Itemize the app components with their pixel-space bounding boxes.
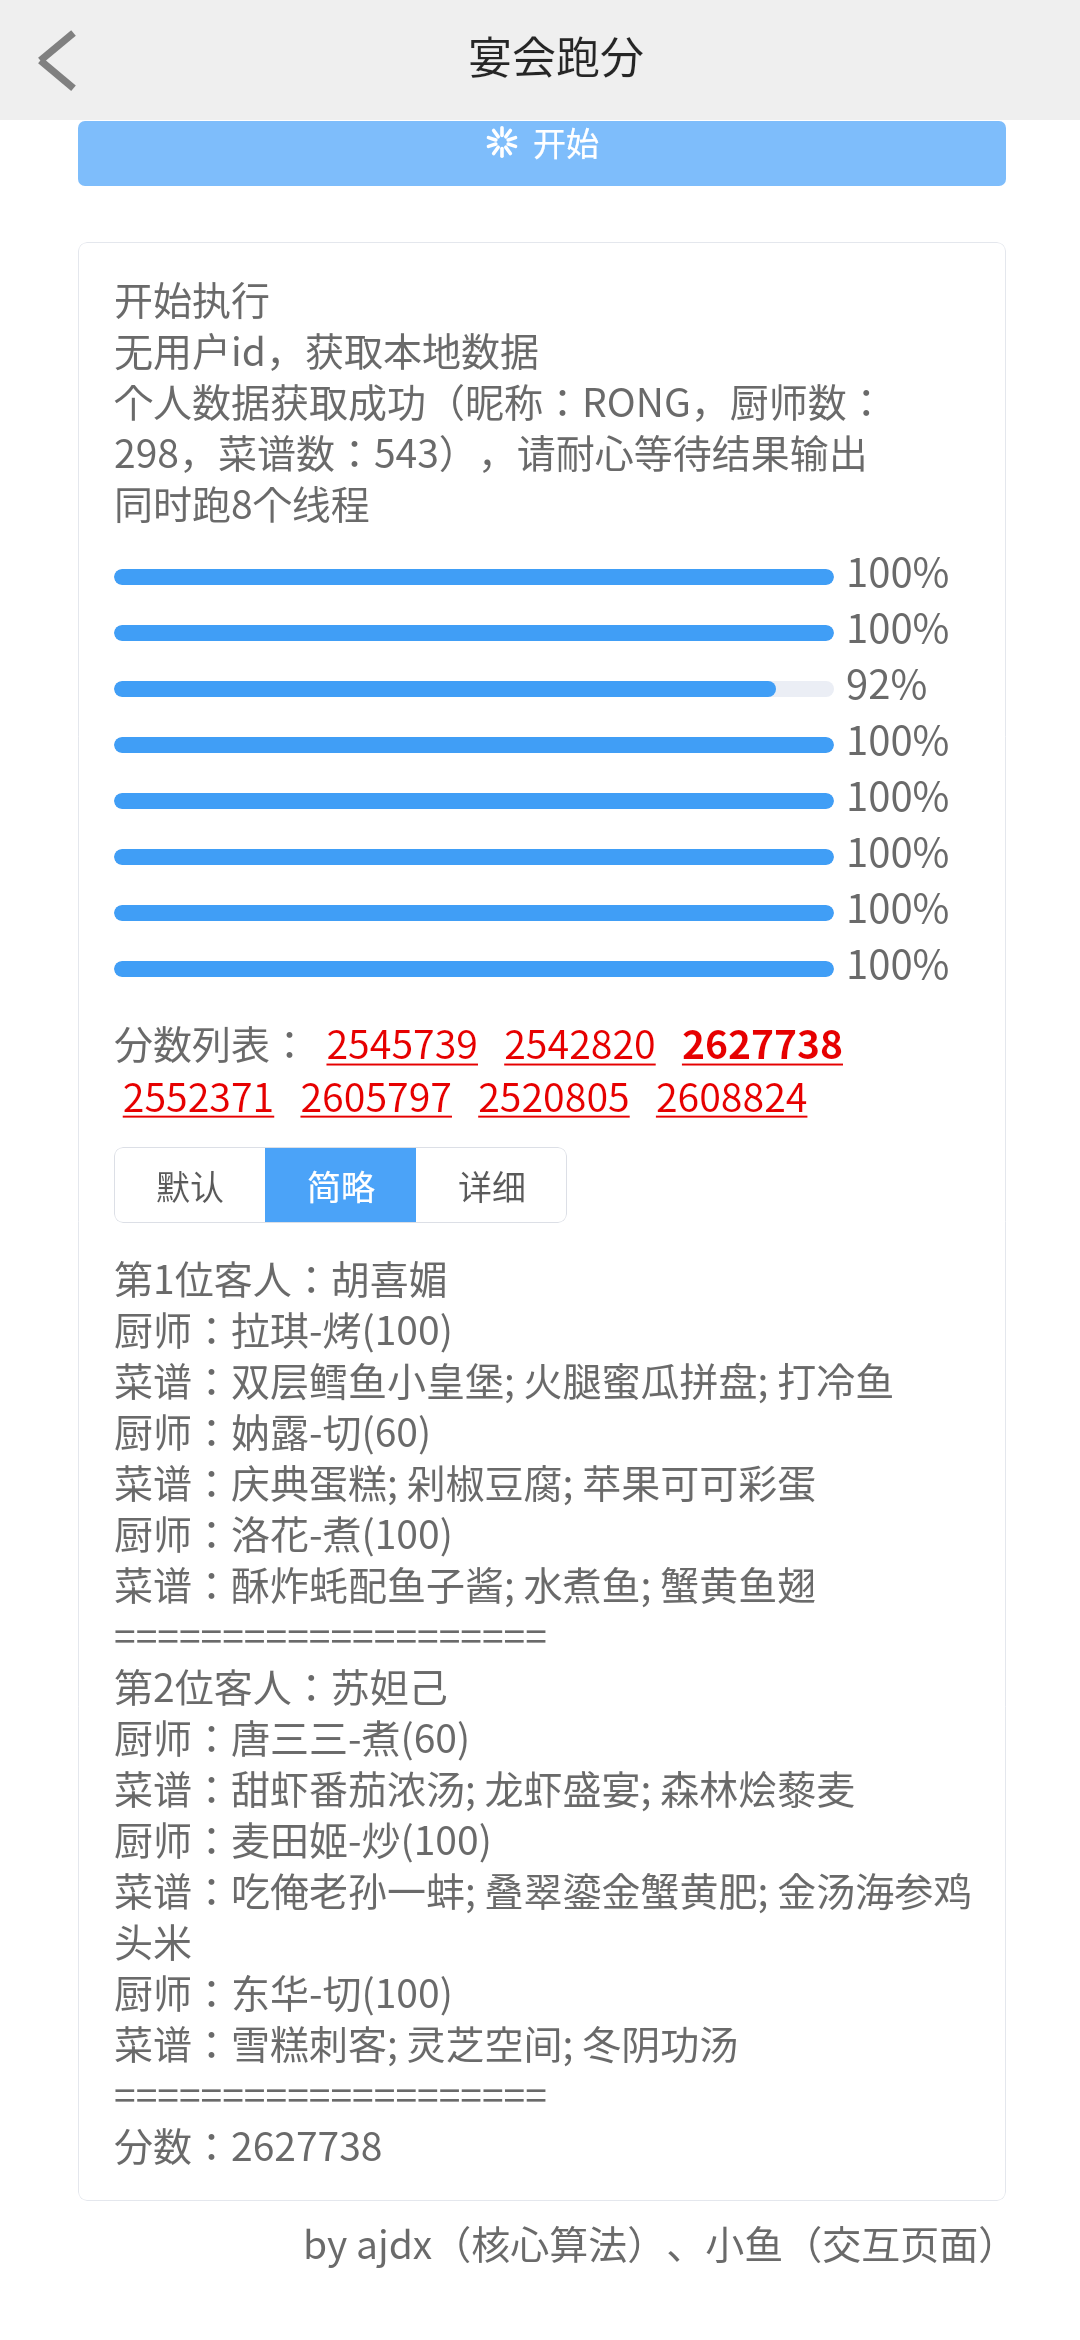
staticText: 第1位客人：胡喜媚 厨师：拉琪-烤(100) 菜谱：双层鳕鱼小皇堡; 火腿蜜瓜拼… [114, 1249, 973, 2172]
staticText: 简略 [307, 1161, 375, 1210]
staticText: 详细 [458, 1161, 526, 1210]
staticText: 100% [846, 709, 950, 765]
staticText: 宴会跑分 [468, 23, 644, 87]
button[interactable]: 简略 [265, 1147, 416, 1223]
staticText: 100% [846, 765, 950, 821]
staticText: 100% [846, 877, 950, 933]
staticText: 100% [846, 933, 950, 989]
staticText: 开始 [533, 121, 599, 166]
button[interactable]: 默认 [114, 1147, 265, 1223]
staticText: 92% [846, 653, 928, 709]
staticText: 开始执行 无用户id，获取本地数据 个人数据获取成功（昵称：RONG，厨师数： … [114, 270, 886, 530]
staticText: 100% [846, 541, 950, 597]
staticText: by ajdx（核心算法）、小鱼（交互页面） [303, 2214, 1018, 2270]
staticText: 分数列表： 2545739 2542820 2627738 2552371 26… [114, 1014, 843, 1123]
button[interactable]: 开始 [78, 121, 1006, 186]
button[interactable]: Back [14, 22, 90, 98]
button[interactable]: 详细 [416, 1147, 567, 1223]
staticText: 100% [846, 821, 950, 877]
staticText: 100% [846, 597, 950, 653]
staticText: 默认 [156, 1161, 224, 1210]
